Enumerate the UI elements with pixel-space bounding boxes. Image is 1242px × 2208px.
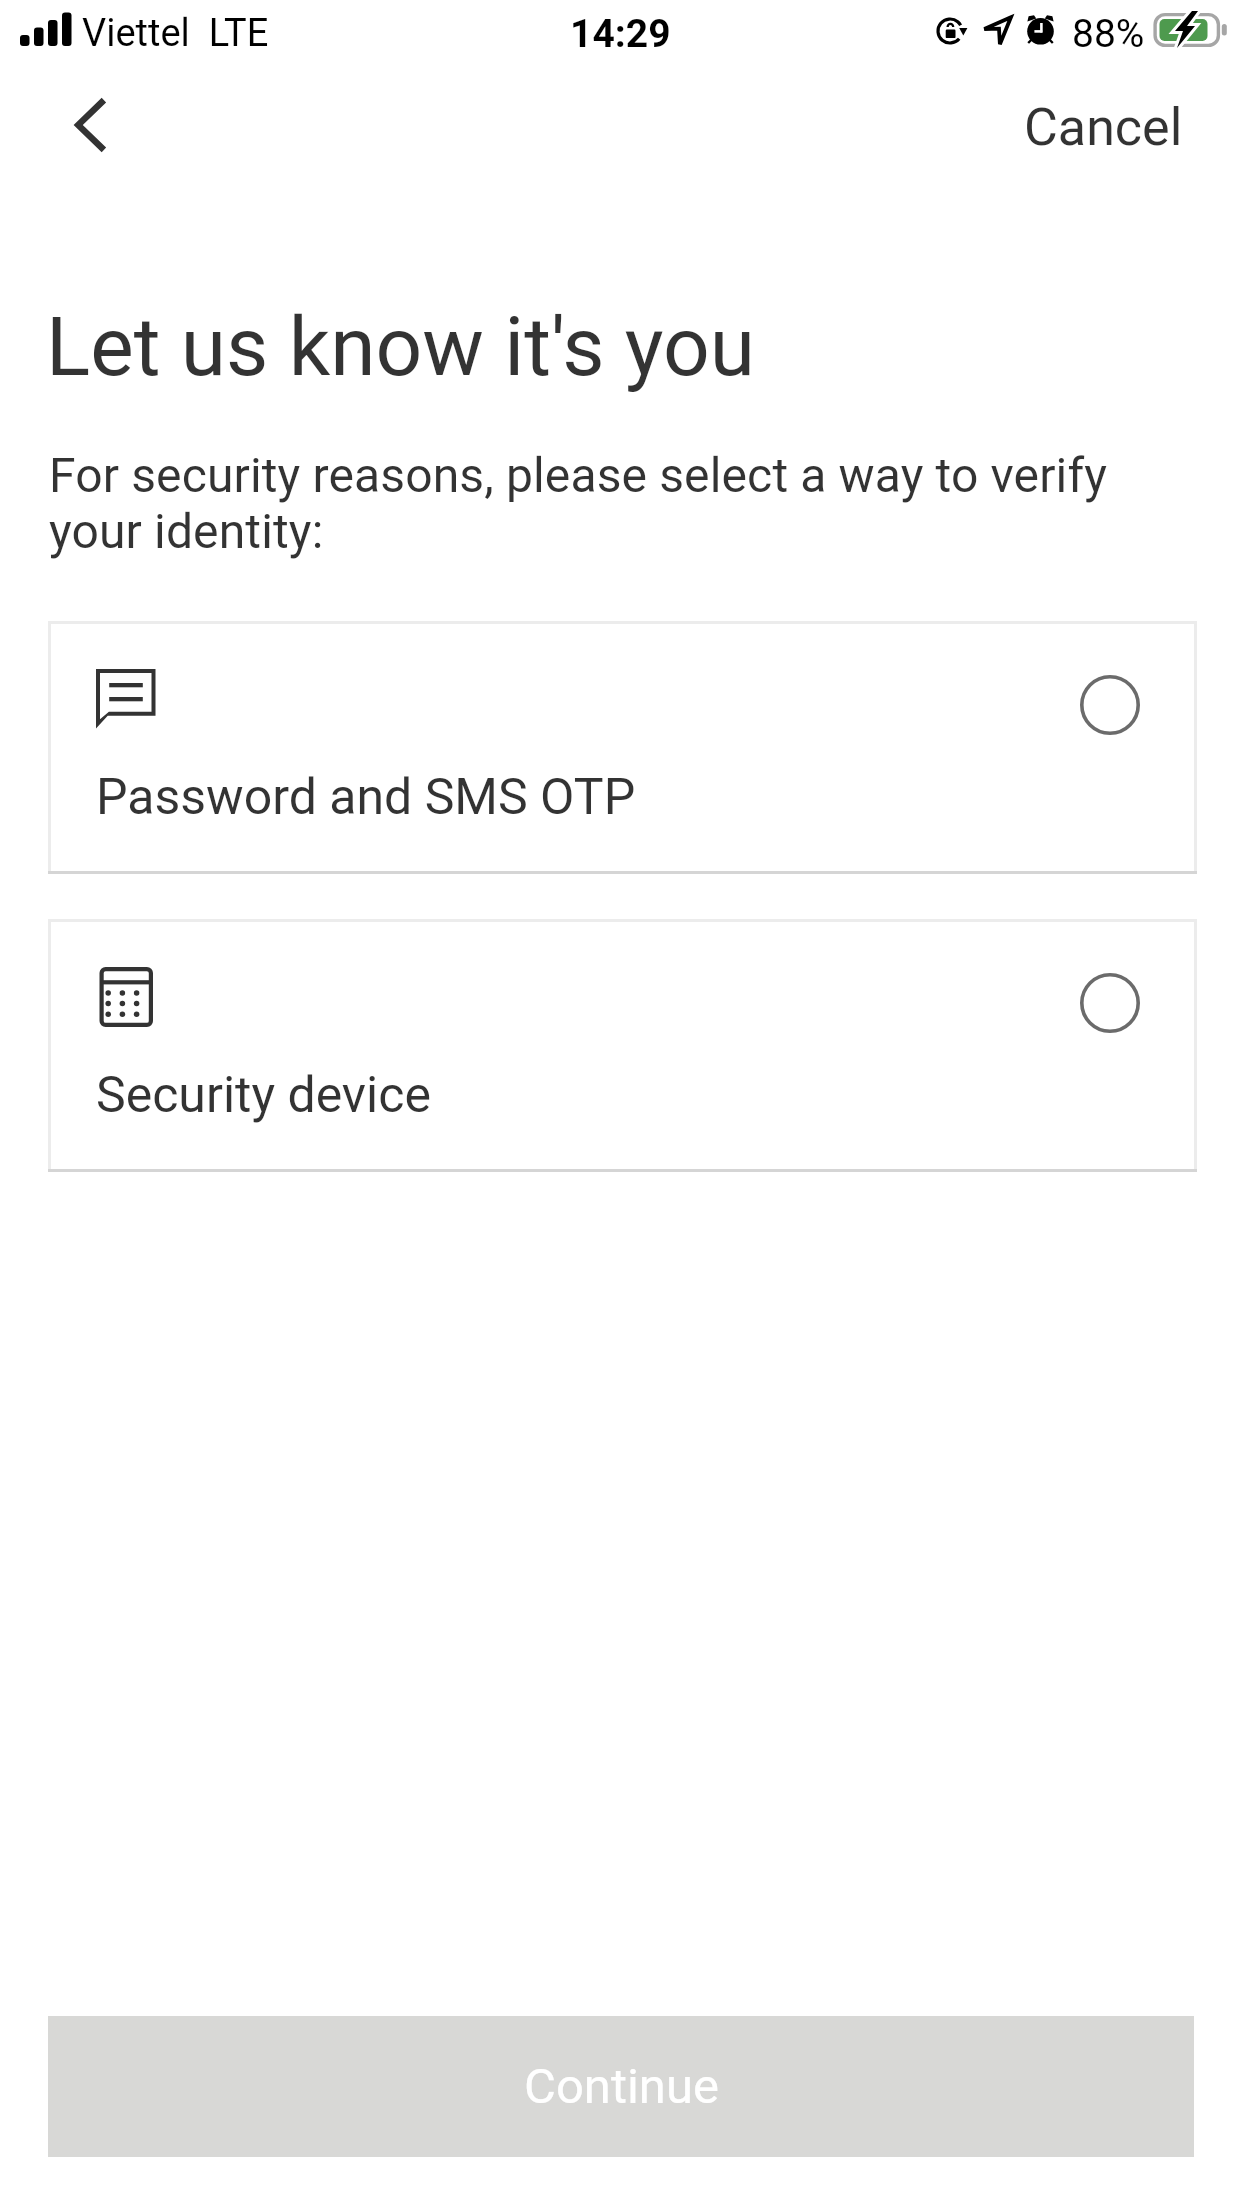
- staticText: Viettel LTE: [82, 11, 269, 56]
- button[interactable]: Cancel: [1005, 82, 1201, 174]
- staticText: Security device: [96, 1066, 431, 1125]
- other: Location: [982, 15, 1014, 47]
- staticText: For security reasons, please select a wa…: [49, 447, 1169, 559]
- staticText: Let us know it's you: [46, 299, 755, 395]
- staticText: 88%: [1072, 11, 1145, 57]
- other: Rotation lock: [932, 12, 968, 48]
- staticText: 14:29: [570, 11, 671, 57]
- button[interactable]: Password and SMS OTP: [48, 621, 1197, 874]
- staticText: Cancel: [1024, 97, 1183, 158]
- staticText: Password and SMS OTP: [96, 768, 636, 827]
- staticText: Continue: [524, 2058, 719, 2115]
- button[interactable]: Security device: [48, 919, 1197, 1172]
- other: Alarm: [1026, 13, 1056, 43]
- button[interactable]: Back: [38, 82, 124, 168]
- button[interactable]: Continue: [48, 2016, 1194, 2157]
